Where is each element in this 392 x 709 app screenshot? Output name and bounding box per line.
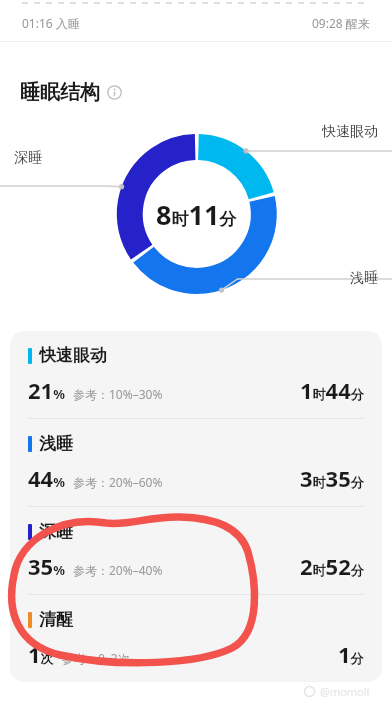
staticText: 参考：10%–30% <box>73 386 163 402</box>
staticText: 8时11分 <box>156 196 237 233</box>
staticText: 参考：20%–40% <box>73 562 163 578</box>
staticText: 参考：0–2次 <box>62 650 130 666</box>
staticText: 35% <box>28 551 65 581</box>
staticText: @momoli <box>320 684 370 699</box>
staticText: 快速眼动 <box>322 123 378 141</box>
staticText: 1次 <box>28 639 54 669</box>
staticText: 浅睡 <box>350 269 378 287</box>
staticText: 睡眠结构 <box>20 80 100 105</box>
staticText: 深睡 <box>14 149 42 167</box>
button[interactable]: 浅睡 <box>10 419 382 506</box>
staticText: 09:28 醒来 <box>312 15 370 31</box>
staticText: 1时44分 <box>300 375 364 405</box>
staticText: 44% <box>28 463 65 493</box>
staticText: 3时35分 <box>300 463 364 493</box>
staticText: 清醒 <box>39 609 73 630</box>
staticText: 参考：20%–60% <box>73 474 163 490</box>
staticText: 1分 <box>338 639 364 669</box>
staticText: 浅睡 <box>39 433 73 454</box>
button[interactable]: 快速眼动 <box>10 331 382 418</box>
button[interactable]: 深睡 <box>10 507 382 594</box>
staticText: 01:16 入睡 <box>22 15 80 31</box>
staticText: 2时52分 <box>300 551 364 581</box>
staticText: 深睡 <box>39 521 73 542</box>
button[interactable]: 清醒 <box>10 595 382 682</box>
staticText: 快速眼动 <box>39 345 107 366</box>
staticText: 21% <box>28 375 65 405</box>
button[interactable]: 睡眠结构说明 <box>107 85 122 100</box>
